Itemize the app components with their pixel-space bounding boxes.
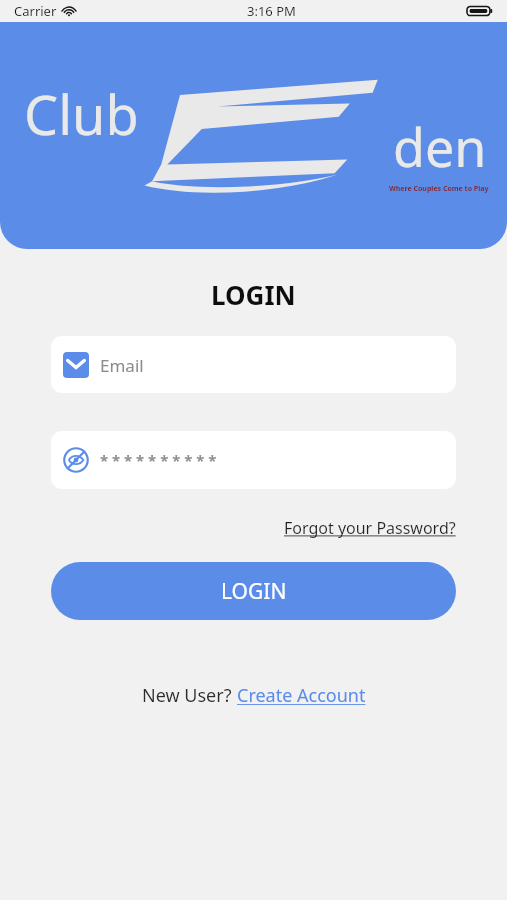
staticText: Club [24,77,139,151]
button[interactable]: Create Account [237,683,366,708]
button[interactable]: Forgot your Password? [284,517,456,539]
staticText: New User? [142,683,237,708]
button[interactable]: Email [51,336,456,393]
staticText: den [393,111,487,182]
button[interactable]: Show password [62,446,90,474]
staticText: LOGIN [221,577,287,606]
button[interactable]: Show password [51,431,456,489]
staticText: Where Couples Come to Play [389,184,489,194]
staticText: Carrier [14,2,57,20]
staticText: Email [100,354,144,377]
staticText: LOGIN [211,277,296,312]
staticText: * * * * * * * * * * [100,450,217,470]
button[interactable]: LOGIN [51,562,456,620]
staticText: 3:16 PM [247,2,296,20]
staticText: Create Account [237,683,366,708]
staticText: Forgot your Password? [284,517,456,539]
